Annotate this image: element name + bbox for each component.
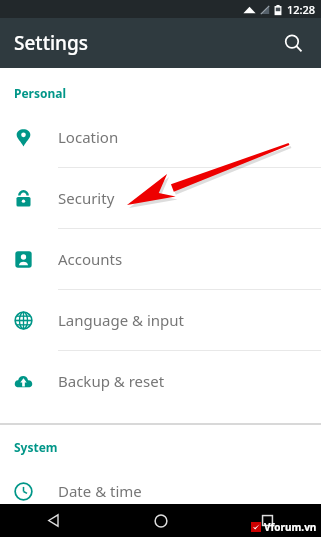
button[interactable]: Home [107, 504, 214, 537]
staticText: Personal [14, 85, 67, 101]
button[interactable]: Location [0, 107, 321, 168]
staticText: Location [58, 127, 119, 147]
button[interactable]: Language & input [0, 290, 321, 351]
staticText: Security [58, 188, 115, 208]
staticText: Vforum.vn [264, 520, 317, 534]
button[interactable]: Accounts [0, 229, 321, 290]
staticText: Settings [14, 30, 88, 56]
staticText: Date & time [58, 481, 142, 501]
button[interactable]: Recent apps [214, 504, 321, 537]
button[interactable]: Security [0, 168, 321, 229]
staticText: 12:28 [287, 2, 316, 17]
staticText: Language & input [58, 310, 184, 330]
button[interactable]: Back [0, 504, 107, 537]
staticText: Backup & reset [58, 371, 165, 391]
staticText: System [14, 439, 58, 455]
button[interactable]: Backup & reset [0, 351, 321, 411]
button[interactable]: Search [273, 23, 313, 63]
staticText: Accounts [58, 249, 123, 269]
button[interactable]: Date & time [0, 461, 321, 521]
